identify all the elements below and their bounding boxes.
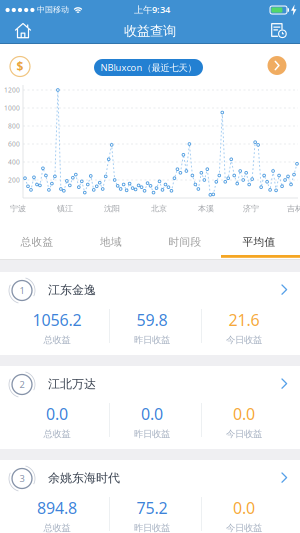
button[interactable]: 1 — [0, 272, 300, 355]
button[interactable]: 时间段 — [147, 225, 222, 259]
staticText: 昨日收益 — [134, 522, 170, 533]
staticText: 总收益 — [20, 235, 53, 248]
staticText: 镇江 — [57, 204, 73, 213]
staticText: NBluxcon（最近七天） — [100, 61, 196, 74]
staticText: 400 — [8, 158, 20, 166]
staticText: 江东金逸 — [48, 283, 96, 297]
staticText: 余姚东海时代 — [48, 471, 120, 485]
staticText: 600 — [8, 140, 20, 148]
staticText: 昨日收益 — [134, 428, 170, 440]
staticText: 中国移动 — [37, 5, 69, 14]
staticText: 1056.2 — [32, 309, 81, 330]
staticText: 平均值 — [242, 235, 275, 248]
button[interactable]: NBluxcon（最近七天） — [94, 59, 203, 76]
staticText: 北京 — [151, 204, 167, 213]
button[interactable]: 总收益 — [0, 225, 74, 259]
staticText: 今日收益 — [226, 334, 262, 346]
staticText: 0.0 — [46, 403, 68, 424]
staticText: 75.2 — [136, 497, 167, 518]
staticText: 地域 — [100, 235, 122, 248]
staticText: 2 — [19, 378, 24, 391]
staticText: 昨日收益 — [134, 334, 170, 346]
staticText: 0.0 — [141, 403, 163, 424]
button[interactable]: Home — [14, 22, 31, 38]
staticText: 1000 — [4, 104, 20, 112]
staticText: 今日收益 — [226, 428, 262, 440]
staticText: $ — [16, 58, 23, 74]
staticText: 济宁 — [243, 204, 259, 213]
staticText: 收益查询 — [124, 23, 176, 39]
staticText: 894.8 — [37, 497, 77, 518]
staticText: 1 — [19, 284, 24, 297]
staticText: 800 — [8, 122, 20, 130]
button[interactable]: History — [270, 22, 287, 38]
staticText: 200 — [8, 176, 20, 184]
staticText: 总收益 — [43, 334, 70, 346]
staticText: 今日收益 — [226, 522, 262, 533]
staticText: 时间段 — [168, 235, 201, 248]
staticText: 沈阳 — [104, 204, 120, 213]
staticText: 上午9:34 — [134, 3, 170, 16]
staticText: 吉林 — [287, 204, 300, 213]
staticText: 本溪 — [198, 204, 214, 213]
staticText: 1200 — [4, 86, 20, 94]
staticText: 江北万达 — [48, 377, 96, 391]
staticText: 总收益 — [43, 428, 70, 440]
button[interactable]: 地域 — [73, 225, 148, 259]
staticText: 总收益 — [43, 522, 70, 533]
staticText: 3 — [19, 472, 24, 485]
button[interactable]: 2 — [0, 366, 300, 449]
button[interactable]: 3 — [0, 460, 300, 533]
staticText: 0.0 — [233, 403, 255, 424]
staticText: 0.0 — [233, 497, 255, 518]
staticText: 宁波 — [10, 204, 26, 213]
button[interactable]: Next — [267, 56, 286, 75]
staticText: 21.6 — [228, 309, 259, 330]
staticText: 59.8 — [136, 309, 167, 330]
button[interactable]: 平均值 — [221, 225, 296, 259]
